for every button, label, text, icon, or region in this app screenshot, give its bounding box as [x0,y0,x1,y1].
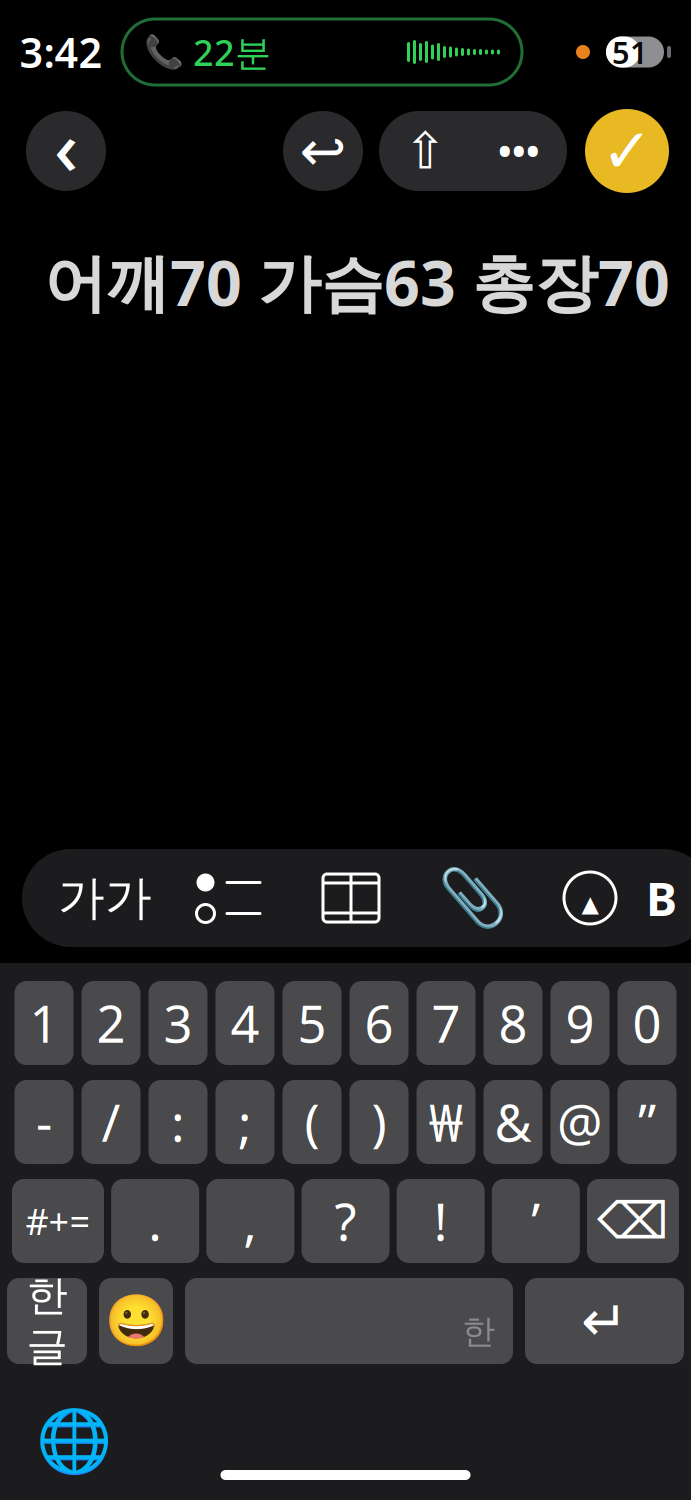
staticText: 3:42 [19,25,102,79]
staticText: ↩ [299,119,346,183]
button[interactable]: / [81,1080,140,1164]
staticText: ↵ [581,1289,628,1353]
staticText: ⇧ [404,122,446,180]
button[interactable]: 5 [282,981,341,1065]
button[interactable]: Markup [534,855,646,941]
staticText: 7 [431,989,460,1057]
staticText: 22분 [184,28,271,76]
button[interactable]: 9 [550,981,609,1065]
button[interactable]: 6 [349,981,408,1065]
staticText: 한글 [26,1270,67,1372]
staticText: ( [304,1088,319,1156]
button[interactable]: Switch keyboard language [38,1405,110,1477]
button[interactable]: ( [282,1080,341,1164]
staticText: B [646,867,677,929]
button[interactable]: Checklist [168,855,290,941]
button[interactable]: Share [379,111,471,191]
staticText: 😀 [104,1292,167,1350]
staticText: ⌫ [597,1192,669,1250]
button[interactable]: ’ [492,1179,580,1263]
staticText: ••• [498,127,540,175]
staticText: 51 [612,32,648,72]
staticText: 가가 [58,869,152,927]
staticText: & [494,1088,531,1156]
button[interactable]: Text formatting [42,855,168,941]
staticText: : [171,1088,185,1156]
button[interactable]: ) [349,1080,408,1164]
button[interactable]: : [148,1080,207,1164]
button[interactable]: Attachment [412,855,534,941]
button[interactable]: @ [550,1080,609,1164]
button[interactable]: Delete [587,1179,679,1263]
staticText: ! [434,1187,448,1255]
button[interactable]: - [14,1080,73,1164]
staticText: ” [638,1088,656,1156]
staticText: 어깨70 가슴63 총장70 [44,240,670,323]
button[interactable]: ₩ [416,1080,475,1164]
staticText: , [243,1187,257,1255]
staticText: 5 [297,989,326,1057]
button[interactable]: 2 [81,981,140,1065]
button[interactable]: ” [617,1080,676,1164]
button[interactable]: 1 [14,981,73,1065]
button[interactable]: ; [215,1080,274,1164]
staticText: 📎 [438,866,508,930]
staticText: ) [371,1088,386,1156]
button[interactable]: Back [26,111,106,191]
staticText: ‹ [54,96,78,196]
staticText: 8 [498,989,527,1057]
staticText: 1 [29,989,58,1057]
staticText: 9 [565,989,594,1057]
staticText: @ [557,1088,603,1156]
staticText: . [148,1187,162,1255]
staticText: ’ [531,1187,540,1255]
button[interactable]: More options [471,111,567,191]
button[interactable]: & [483,1080,542,1164]
button[interactable]: . [111,1179,199,1263]
button[interactable]: 7 [416,981,475,1065]
button[interactable]: ? [301,1179,389,1263]
button[interactable]: ! [397,1179,485,1263]
staticText: 0 [632,989,661,1057]
button[interactable]: #+= [12,1179,104,1263]
button[interactable]: 3 [148,981,207,1065]
staticText: 한 [462,1311,495,1352]
staticText: 2 [96,989,125,1057]
button[interactable]: Table [290,855,412,941]
button[interactable]: 한글 [7,1278,87,1364]
staticText: / [101,1088,120,1156]
staticText: ₩ [429,1088,463,1156]
button[interactable]: 8 [483,981,542,1065]
button[interactable]: , [206,1179,294,1263]
staticText: 6 [364,989,393,1057]
button[interactable]: Space [185,1278,513,1364]
staticText: #+= [25,1197,90,1245]
button[interactable]: Bold [646,855,686,941]
staticText: ? [334,1187,356,1255]
button[interactable]: Emoji [99,1278,173,1364]
button[interactable]: Return [525,1278,684,1364]
staticText: - [36,1088,52,1156]
staticText: ▲ [581,891,598,917]
staticText: 3 [163,989,192,1057]
staticText: 4 [230,989,259,1057]
button[interactable]: Done [585,109,669,193]
staticText: 🌐 [36,1406,112,1476]
staticText: ✓ [601,116,652,186]
button[interactable]: Undo [283,111,363,191]
button[interactable]: 0 [617,981,676,1065]
button[interactable]: 4 [215,981,274,1065]
staticText: ; [238,1088,252,1156]
staticText: 📞 [144,34,184,70]
